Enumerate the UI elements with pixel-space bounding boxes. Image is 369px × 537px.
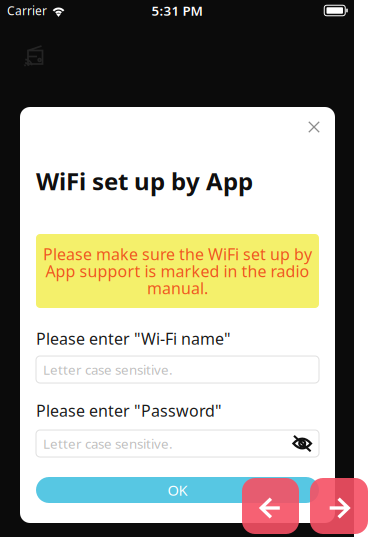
staticText: Carrier bbox=[7, 2, 47, 18]
staticText: Please enter "Password" bbox=[36, 400, 222, 421]
button[interactable]: Forward bbox=[310, 478, 368, 534]
button[interactable]: OK bbox=[36, 477, 319, 503]
button[interactable]: Close bbox=[302, 115, 326, 139]
staticText: Please make sure the WiFi set up by bbox=[43, 243, 312, 265]
staticText: Please enter "Wi-Fi name" bbox=[36, 328, 231, 349]
staticText: OK bbox=[167, 480, 187, 500]
staticText: 5:31 PM bbox=[151, 2, 202, 19]
staticText: WiFi set up by App bbox=[36, 165, 253, 197]
staticText: Letter case sensitive. bbox=[43, 361, 173, 378]
staticText: App support is marked in the radio bbox=[45, 260, 309, 282]
button[interactable]: Back bbox=[242, 478, 299, 534]
button[interactable]: Show password bbox=[292, 434, 313, 452]
staticText: manual. bbox=[147, 277, 208, 299]
staticText: Letter case sensitive. bbox=[43, 435, 173, 452]
